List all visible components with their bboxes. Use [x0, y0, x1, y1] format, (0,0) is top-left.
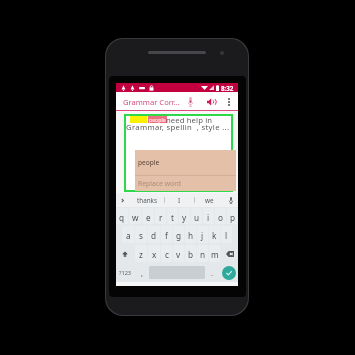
staticText: b: [188, 249, 194, 260]
staticText: o: [218, 212, 223, 223]
button[interactable]: t: [167, 208, 178, 224]
button[interactable]: y: [179, 208, 190, 224]
button[interactable]: a: [122, 226, 134, 243]
staticText: g: [176, 230, 182, 241]
staticText: e: [146, 212, 151, 223]
button[interactable]: More options: [223, 92, 234, 111]
button[interactable]: Voice input: [183, 92, 198, 111]
staticText: u: [194, 212, 200, 223]
staticText: c: [165, 249, 169, 260]
button[interactable]: Shift: [116, 245, 134, 262]
button[interactable]: u: [191, 208, 202, 224]
staticText: Replace word: [138, 179, 181, 188]
staticText: a: [126, 230, 131, 241]
button[interactable]: i: [203, 208, 214, 224]
staticText: .: [211, 268, 214, 278]
button[interactable]: g: [173, 226, 184, 243]
button[interactable]: h: [185, 226, 196, 243]
staticText: need help in: [166, 115, 213, 125]
staticText: n: [200, 249, 206, 260]
staticText: y: [182, 212, 187, 223]
button[interactable]: p: [227, 208, 238, 224]
button[interactable]: r: [155, 208, 166, 224]
staticText: h: [188, 230, 194, 241]
staticText: people: [149, 116, 166, 123]
staticText: k: [212, 230, 217, 241]
staticText: ?123: [119, 269, 132, 277]
staticText: j: [201, 230, 204, 241]
staticText: l: [225, 230, 228, 241]
staticText: we: [205, 196, 214, 205]
button[interactable]: j: [197, 226, 208, 243]
staticText: z: [139, 249, 143, 260]
button[interactable]: e: [142, 208, 154, 224]
button[interactable]: we: [195, 193, 224, 207]
button[interactable]: Backspace: [221, 245, 238, 262]
button[interactable]: Speak text: [204, 92, 219, 111]
staticText: q: [119, 212, 125, 223]
staticText: Grammar Corr...: [123, 97, 180, 107]
button[interactable]: d: [148, 226, 160, 243]
staticText: i: [207, 212, 210, 223]
button[interactable]: c: [161, 245, 172, 262]
button[interactable]: m: [209, 245, 220, 262]
button[interactable]: f: [161, 226, 172, 243]
button[interactable]: n: [197, 245, 208, 262]
staticText: d: [151, 230, 157, 241]
staticText: t: [171, 212, 174, 223]
button[interactable]: thanks: [129, 193, 164, 207]
staticText: f: [165, 230, 168, 241]
button[interactable]: Symbols: [116, 264, 135, 281]
button[interactable]: q: [116, 208, 128, 224]
button[interactable]: z: [135, 245, 147, 262]
staticText: 8:32: [221, 84, 234, 92]
button[interactable]: Expand suggestions: [116, 193, 129, 207]
button[interactable]: x: [148, 245, 160, 262]
button[interactable]: o: [215, 208, 226, 224]
staticText: people: [138, 158, 160, 167]
button[interactable]: k: [209, 226, 220, 243]
staticText: I: [178, 196, 181, 205]
staticText: Grammar, spellin , style ...: [126, 122, 230, 132]
staticText: w: [132, 212, 139, 223]
button[interactable]: b: [185, 245, 196, 262]
staticText: thanks: [137, 196, 157, 205]
staticText: r: [159, 212, 163, 223]
staticText: v: [176, 249, 181, 260]
button[interactable]: Period: [206, 264, 218, 281]
button[interactable]: Enter: [219, 264, 238, 281]
button[interactable]: I: [165, 193, 194, 207]
staticText: p: [230, 212, 236, 223]
staticText: m: [211, 249, 219, 260]
button[interactable]: s: [135, 226, 147, 243]
staticText: s: [139, 230, 143, 241]
button[interactable]: v: [173, 245, 184, 262]
button[interactable]: w: [129, 208, 141, 224]
button[interactable]: Voice typing: [224, 193, 238, 207]
staticText: x: [152, 249, 157, 260]
staticText: ,: [141, 268, 144, 278]
button[interactable]: l: [221, 226, 232, 243]
button[interactable]: Comma: [136, 264, 148, 281]
